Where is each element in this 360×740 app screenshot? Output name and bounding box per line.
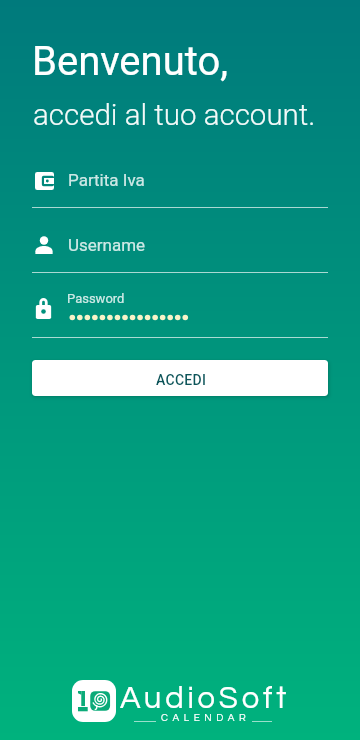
staticText: ACCEDI	[156, 372, 207, 388]
staticText: accedi al tuo account.	[33, 98, 316, 133]
button[interactable]: Password	[32, 288, 328, 338]
button[interactable]: Partita Iva	[32, 166, 328, 208]
staticText: Password	[67, 291, 125, 306]
other: AudioSoft Calendar	[72, 680, 116, 722]
button[interactable]: ACCEDI	[32, 360, 328, 396]
button[interactable]: Username	[32, 231, 328, 273]
staticText: AudioSoft	[120, 683, 291, 715]
other: Partita Iva	[35, 172, 54, 190]
staticText: Benvenuto,	[32, 38, 229, 85]
other: Password	[35, 298, 52, 319]
staticText: Username	[68, 235, 146, 255]
staticText: CALENDAR	[161, 713, 251, 723]
staticText: Partita Iva	[68, 170, 145, 190]
other: Username	[35, 236, 53, 254]
